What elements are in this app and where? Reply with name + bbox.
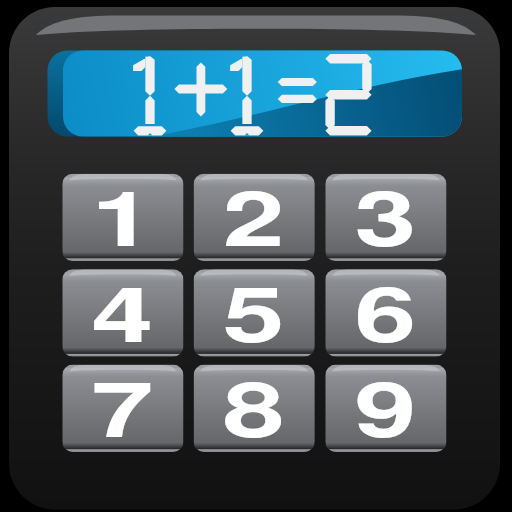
button[interactable]: Calculator [0, 0, 512, 512]
